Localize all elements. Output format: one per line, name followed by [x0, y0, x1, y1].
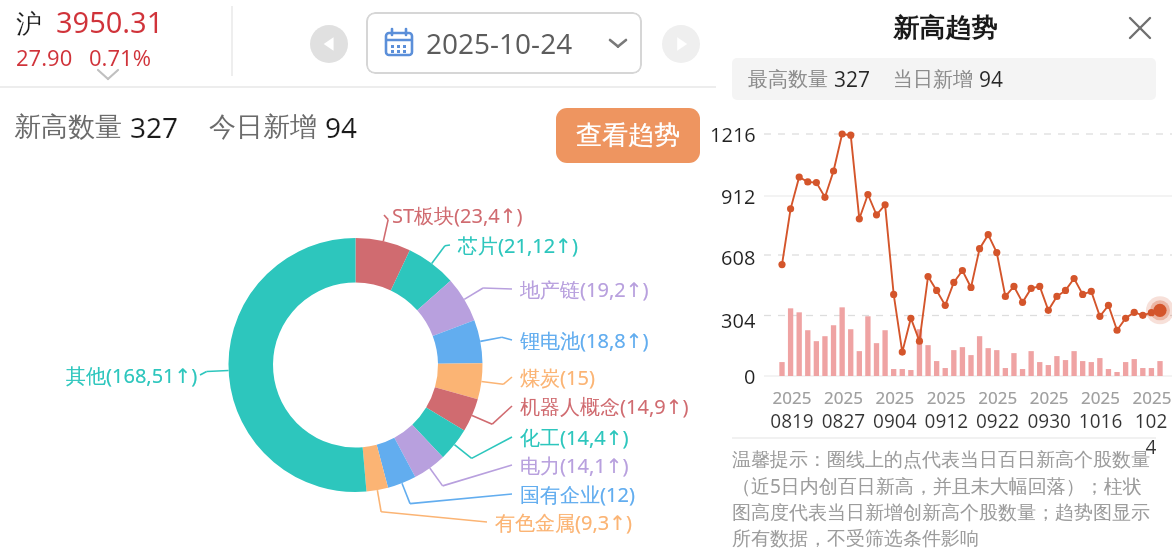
staticText: 新高趋势: [893, 12, 997, 45]
staticText: 当日新增: [893, 67, 973, 92]
staticText: 94: [325, 108, 358, 146]
staticText: 3950.31: [56, 2, 164, 41]
button[interactable]: 查看趋势: [556, 108, 700, 163]
button[interactable]: Close: [1120, 8, 1160, 48]
staticText: 温馨提示：圈线上的点代表当日百日新高个股数量（近5日内创百日新高，并且未大幅回落…: [732, 448, 1156, 550]
staticText: 0.71%: [89, 42, 151, 72]
staticText: 327: [130, 108, 179, 146]
staticText: 沪: [16, 8, 42, 41]
staticText: 今日新增: [209, 110, 317, 144]
staticText: 查看趋势: [576, 119, 680, 152]
button[interactable]: 2025-10-24: [366, 12, 642, 74]
staticText: 2025-10-24: [426, 24, 573, 62]
button[interactable]: Next day: [662, 25, 700, 63]
staticText: 327: [834, 65, 871, 94]
staticText: 94: [979, 65, 1004, 94]
staticText: 最高数量: [748, 67, 828, 92]
button[interactable]: Previous day: [310, 25, 348, 63]
staticText: 27.90: [16, 42, 73, 72]
staticText: 新高数量: [14, 110, 122, 144]
